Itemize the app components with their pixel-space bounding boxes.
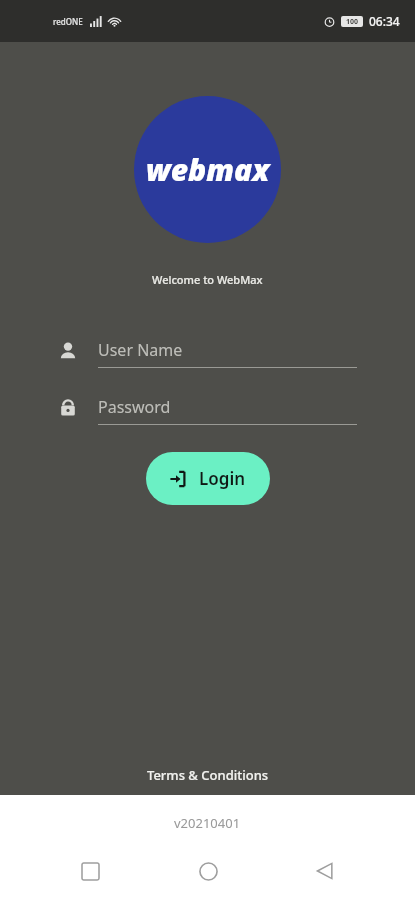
staticText: Login (199, 467, 246, 490)
other: Password (58, 398, 78, 418)
button[interactable]: Recents (63, 844, 117, 898)
staticText: 100 (346, 17, 359, 27)
button[interactable]: Password (58, 390, 357, 425)
staticText: v20210401 (174, 814, 241, 832)
staticText: User Name (98, 339, 183, 361)
staticText: redONE (53, 16, 83, 27)
button[interactable]: Back (298, 844, 352, 898)
staticText: webmax (146, 149, 270, 190)
button[interactable]: User (58, 333, 357, 368)
staticText: Password (98, 396, 171, 418)
staticText: 06:34 (369, 13, 400, 29)
button[interactable]: Terms & Conditions (147, 766, 269, 784)
other: User (58, 341, 78, 361)
button[interactable]: Home (181, 844, 235, 898)
button[interactable]: Login (146, 452, 270, 505)
staticText: Welcome to WebMax (152, 272, 263, 287)
